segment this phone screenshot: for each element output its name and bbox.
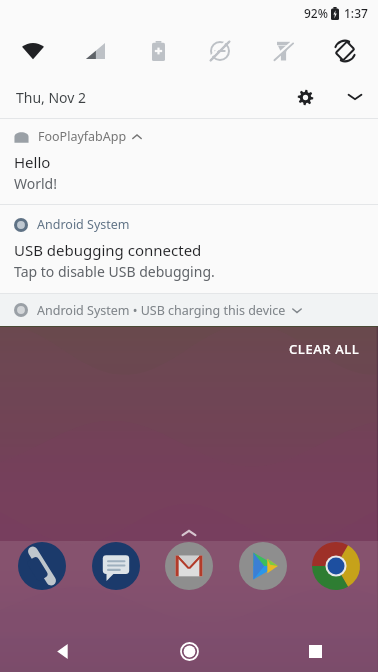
- staticText: Hello: [14, 152, 51, 172]
- button[interactable]: Do not disturb: [201, 32, 239, 70]
- button[interactable]: CLEAR ALL: [281, 334, 368, 364]
- button[interactable]: Battery saver: [139, 32, 177, 70]
- button[interactable]: FooPlayfabApp: [0, 119, 378, 204]
- button[interactable]: Android System: [0, 205, 378, 293]
- staticText: USB debugging connected: [14, 240, 202, 260]
- button[interactable]: Play Store: [235, 538, 291, 594]
- button[interactable]: Recent apps: [293, 630, 337, 672]
- staticText: CLEAR ALL: [289, 340, 360, 358]
- staticText: Tap to disable USB debugging.: [14, 262, 215, 281]
- staticText: World!: [14, 174, 57, 193]
- button[interactable]: Wi-Fi: [14, 32, 52, 70]
- button[interactable]: Phone: [14, 538, 70, 594]
- button[interactable]: Flashlight: [264, 32, 302, 70]
- button[interactable]: Gmail: [161, 538, 217, 594]
- button[interactable]: Android System • USB charging this devic…: [0, 294, 378, 326]
- button[interactable]: Chrome: [308, 538, 364, 594]
- staticText: FooPlayfabApp: [38, 128, 127, 145]
- staticText: Thu, Nov 2: [16, 88, 87, 107]
- button[interactable]: Auto-rotate: [326, 32, 364, 70]
- staticText: Android System • USB charging this devic…: [37, 302, 286, 319]
- button[interactable]: Back: [41, 630, 85, 672]
- button[interactable]: Mobile signal: [76, 32, 114, 70]
- button[interactable]: Home: [167, 630, 211, 672]
- button[interactable]: Expand quick settings: [338, 80, 372, 114]
- staticText: 1:37: [344, 5, 368, 21]
- button[interactable]: Settings: [288, 80, 322, 114]
- staticText: 92%: [304, 5, 328, 21]
- button[interactable]: Messages: [88, 538, 144, 594]
- staticText: Android System: [37, 216, 130, 233]
